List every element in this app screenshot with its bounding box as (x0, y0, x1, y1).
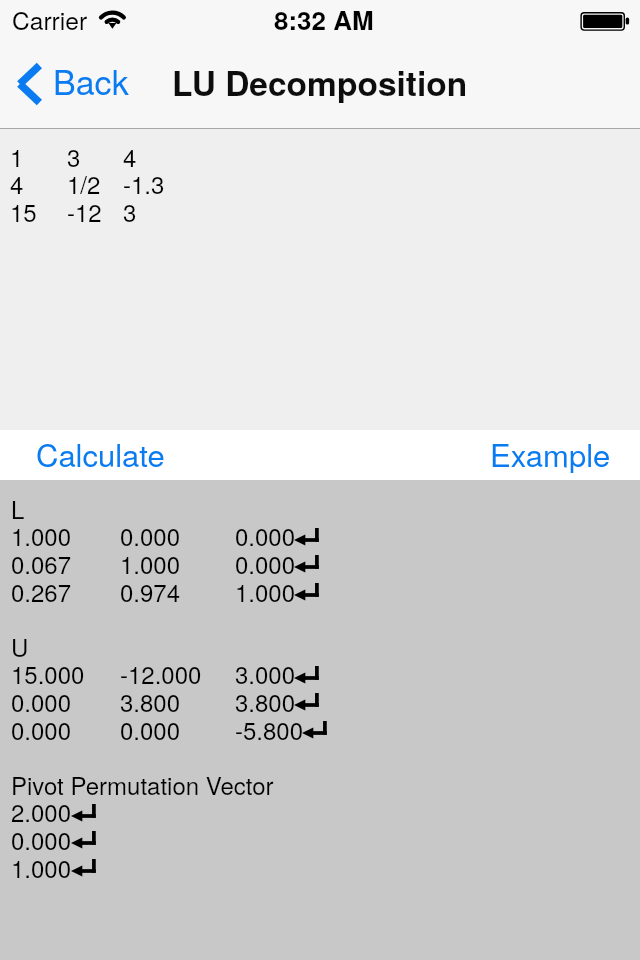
staticText: 15 (10, 194, 37, 228)
staticText: 3 (67, 139, 81, 173)
staticText: 15.000 (11, 656, 85, 690)
other: Battery (580, 11, 632, 31)
staticText: -5.800 (235, 712, 304, 746)
staticText: 1.000 (120, 546, 181, 580)
button[interactable]: Calculate (14, 430, 182, 480)
staticText: U (11, 629, 29, 663)
staticText: 8:32 AM (274, 1, 374, 38)
staticText: Pivot Permutation Vector (11, 767, 274, 801)
staticText: LU Decomposition (172, 58, 468, 106)
staticText: 0.267 (11, 574, 72, 608)
staticText: 0.067 (11, 546, 72, 580)
staticText: 0.000 (120, 518, 181, 552)
staticText: 0.000 (120, 712, 181, 746)
staticText: Carrier (12, 2, 88, 37)
staticText: 4 (123, 139, 137, 173)
staticText: 3.000 (235, 656, 296, 690)
staticText: L (11, 491, 25, 525)
staticText: 0.000 (11, 712, 72, 746)
staticText: Back (53, 56, 129, 105)
staticText: 3.800 (120, 684, 181, 718)
staticText: 3.800 (235, 684, 296, 718)
staticText: 1.000 (11, 850, 72, 884)
staticText: 0.000 (11, 822, 72, 856)
staticText: 0.974 (120, 574, 181, 608)
button[interactable]: Example (466, 430, 626, 480)
staticText: Calculate (36, 431, 165, 475)
staticText: Example (490, 431, 611, 475)
staticText: -12.000 (120, 656, 202, 690)
staticText: 0.000 (11, 684, 72, 718)
button[interactable]: 1 (0, 129, 640, 430)
staticText: 4 (10, 166, 24, 200)
staticText: -1.3 (123, 166, 165, 200)
staticText: 2.000 (11, 794, 72, 828)
staticText: 0.000 (235, 546, 296, 580)
staticText: 3 (123, 194, 137, 228)
staticText: 1.000 (11, 518, 72, 552)
staticText: 1/2 (67, 166, 101, 200)
staticText: 1.000 (235, 574, 296, 608)
button[interactable]: Back (0, 52, 143, 117)
staticText: 1 (10, 139, 24, 173)
staticText: 0.000 (235, 518, 296, 552)
staticText: -12 (67, 194, 102, 228)
